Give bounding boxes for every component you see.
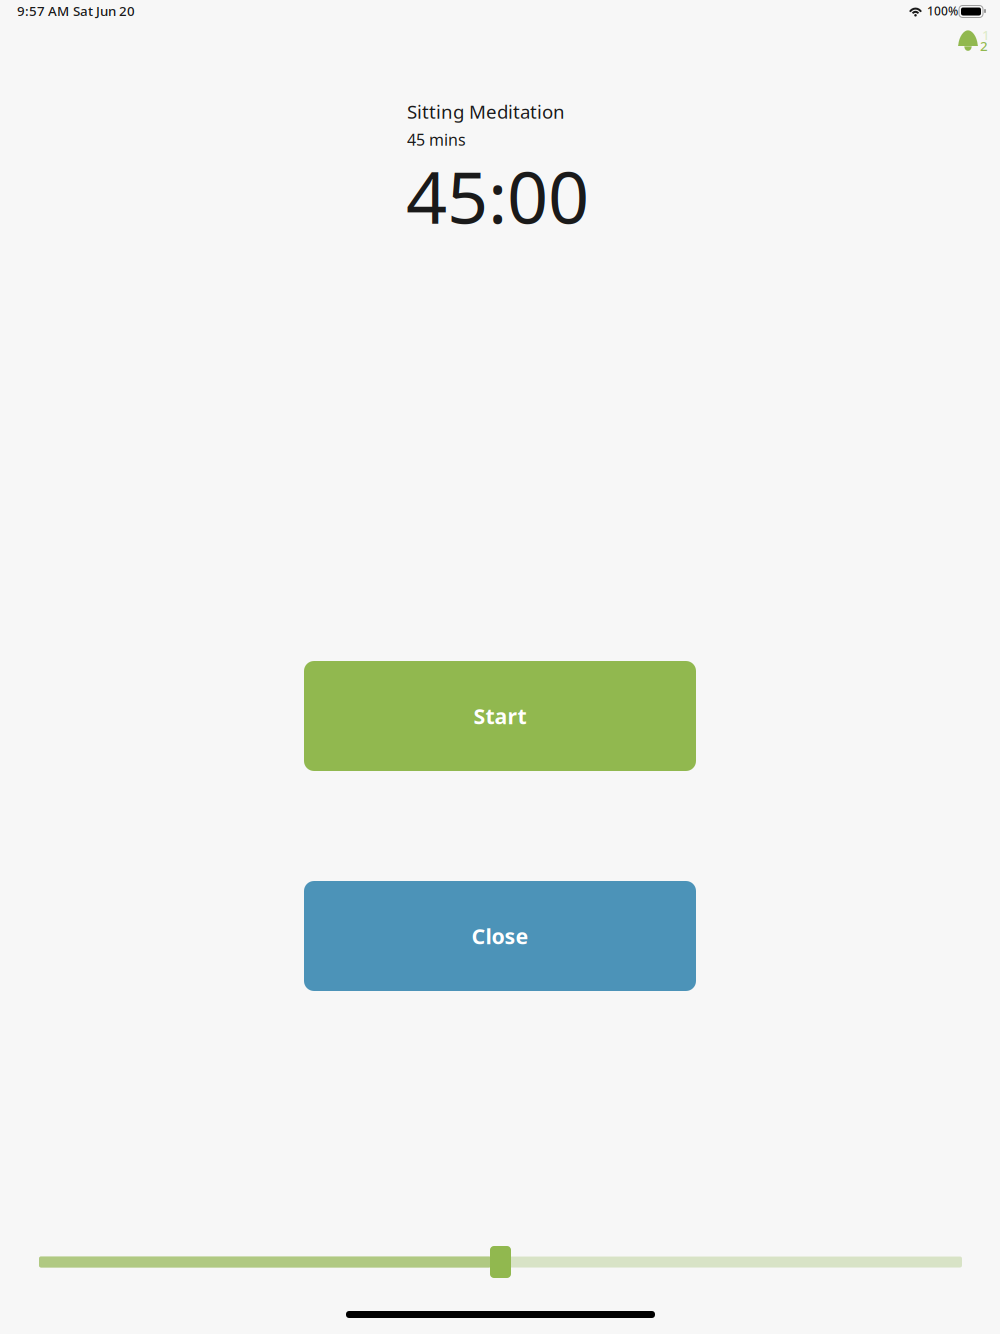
staticText: 100% [927,3,958,19]
staticText: 45:00 [406,148,589,244]
staticText: 9:57 AM [17,2,69,20]
staticText: Sat Jun 20 [73,2,135,20]
staticText: 1 [982,26,990,44]
button[interactable]: Session length [39,1246,962,1278]
staticText: 2 [980,37,988,55]
staticText: Sitting Meditation [407,99,565,124]
staticText: Close [471,922,528,950]
button[interactable]: Close [304,881,696,991]
button[interactable]: Bells, 1 of 2 [958,30,992,54]
staticText: 45 mins [407,129,466,150]
staticText: Start [473,702,526,730]
button[interactable]: Start [304,661,696,771]
